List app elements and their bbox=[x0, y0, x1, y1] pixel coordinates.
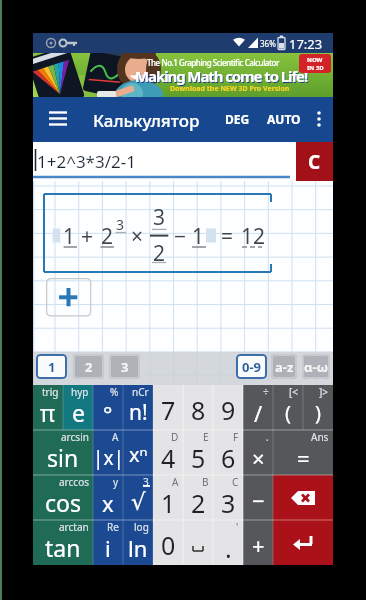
staticText: [< bbox=[289, 385, 299, 399]
button[interactable]: − bbox=[243, 475, 273, 520]
button[interactable]: A bbox=[153, 475, 183, 520]
button[interactable]: 0-9 bbox=[236, 354, 267, 379]
staticText: ° bbox=[103, 398, 113, 428]
button[interactable]: 3 bbox=[109, 354, 140, 379]
staticText: . bbox=[225, 531, 232, 565]
staticText: ) bbox=[315, 399, 321, 426]
staticText: F bbox=[233, 430, 239, 444]
button[interactable] bbox=[273, 475, 333, 520]
button[interactable]: D bbox=[153, 430, 183, 475]
staticText: B bbox=[202, 475, 209, 489]
button[interactable]: AUTO bbox=[263, 105, 305, 133]
staticText: arctan bbox=[59, 520, 89, 534]
button[interactable]: nCr bbox=[123, 385, 153, 430]
button[interactable]: hyp bbox=[63, 385, 93, 430]
button[interactable]: 1 bbox=[36, 354, 67, 379]
staticText: Making Math come to Life! bbox=[136, 67, 309, 87]
button[interactable]: 7 bbox=[153, 385, 183, 430]
button[interactable]: ]> bbox=[303, 385, 333, 430]
staticText: 0-9 bbox=[242, 358, 262, 376]
button[interactable]: % bbox=[93, 385, 123, 430]
button[interactable]: a-z bbox=[271, 354, 297, 379]
button[interactable]: Ans bbox=[273, 430, 333, 475]
staticText: x bbox=[102, 488, 114, 518]
button[interactable]: [< bbox=[273, 385, 303, 430]
button[interactable]: A bbox=[93, 430, 123, 475]
staticText: 3 bbox=[221, 486, 236, 520]
button[interactable]: arctan bbox=[33, 520, 93, 565]
staticText: 36% bbox=[260, 38, 276, 49]
button[interactable] bbox=[308, 105, 330, 133]
staticText: 2 bbox=[153, 239, 166, 268]
staticText: log bbox=[134, 520, 149, 534]
staticText: Making Math come to Life! bbox=[135, 66, 308, 86]
button[interactable]: + bbox=[243, 520, 273, 565]
staticText: ' bbox=[236, 520, 239, 534]
button[interactable]: Re bbox=[93, 520, 123, 565]
staticText: nCr bbox=[132, 385, 149, 399]
button[interactable]: E bbox=[183, 430, 213, 475]
staticText: E bbox=[203, 430, 209, 444]
button[interactable]: y bbox=[93, 475, 123, 520]
button[interactable]: 9 bbox=[213, 385, 243, 430]
staticText: % bbox=[110, 385, 119, 399]
staticText: xⁿ bbox=[129, 441, 148, 468]
staticText: 3 bbox=[143, 475, 149, 489]
staticText: |x| bbox=[93, 445, 123, 471]
button[interactable]: C bbox=[296, 142, 333, 181]
staticText: ]> bbox=[319, 385, 329, 399]
button[interactable]: ' bbox=[213, 520, 243, 565]
button[interactable]: log bbox=[123, 520, 153, 565]
staticText: . bbox=[266, 430, 269, 444]
button[interactable]: C bbox=[213, 475, 243, 520]
staticText: cos bbox=[45, 487, 81, 518]
staticText: / bbox=[254, 398, 263, 428]
button[interactable]: 8 bbox=[183, 385, 213, 430]
staticText: a-z bbox=[275, 358, 294, 376]
staticText: + bbox=[252, 530, 265, 560]
button[interactable]: 3 bbox=[123, 475, 153, 520]
button[interactable]: DEG bbox=[221, 105, 254, 133]
button[interactable]: arcsin bbox=[33, 430, 93, 475]
staticText: The No.1 Graphing Scientific Calculator bbox=[147, 57, 279, 68]
staticText: 6 bbox=[221, 441, 236, 475]
staticText: = bbox=[297, 443, 310, 473]
staticText: y bbox=[113, 475, 119, 489]
staticText: 8 bbox=[191, 393, 206, 427]
staticText: tan bbox=[45, 532, 81, 563]
staticText: Калькулятор bbox=[93, 109, 200, 132]
button[interactable]: trig bbox=[33, 385, 63, 430]
staticText: × bbox=[252, 443, 265, 473]
staticText: 1 bbox=[192, 222, 205, 251]
staticText: Ans bbox=[311, 430, 329, 444]
staticText: 9 bbox=[221, 393, 236, 427]
staticText: n! bbox=[129, 398, 148, 427]
staticText: 3 bbox=[116, 215, 125, 234]
button[interactable] bbox=[41, 104, 75, 134]
button[interactable]: F bbox=[213, 430, 243, 475]
button[interactable]: The No.1 Graphing Scientific Calculator bbox=[33, 53, 333, 97]
staticText: AUTO bbox=[267, 111, 301, 127]
button[interactable]: ÷ bbox=[243, 385, 273, 430]
button[interactable] bbox=[183, 520, 213, 565]
button[interactable]: 2 bbox=[73, 354, 104, 379]
staticText: 1 bbox=[48, 358, 56, 376]
staticText: − bbox=[174, 222, 187, 251]
button[interactable]: xⁿ bbox=[123, 430, 153, 475]
staticText: A bbox=[172, 475, 179, 489]
button[interactable] bbox=[273, 520, 333, 565]
staticText: 2 bbox=[191, 486, 206, 520]
staticText: e bbox=[72, 397, 85, 428]
staticText: = bbox=[221, 222, 234, 251]
staticText: 5 bbox=[191, 441, 206, 475]
button[interactable]: B bbox=[183, 475, 213, 520]
button[interactable]: arccos bbox=[33, 475, 93, 520]
staticText: − bbox=[252, 485, 265, 515]
button[interactable]: α-ω bbox=[302, 354, 330, 379]
staticText: IN 3D bbox=[307, 64, 324, 72]
staticText: D bbox=[171, 430, 179, 444]
button[interactable]: . bbox=[243, 430, 273, 475]
staticText: 1 bbox=[161, 486, 176, 520]
button[interactable]: NOW bbox=[299, 54, 331, 73]
button[interactable]: 0 bbox=[153, 520, 183, 565]
